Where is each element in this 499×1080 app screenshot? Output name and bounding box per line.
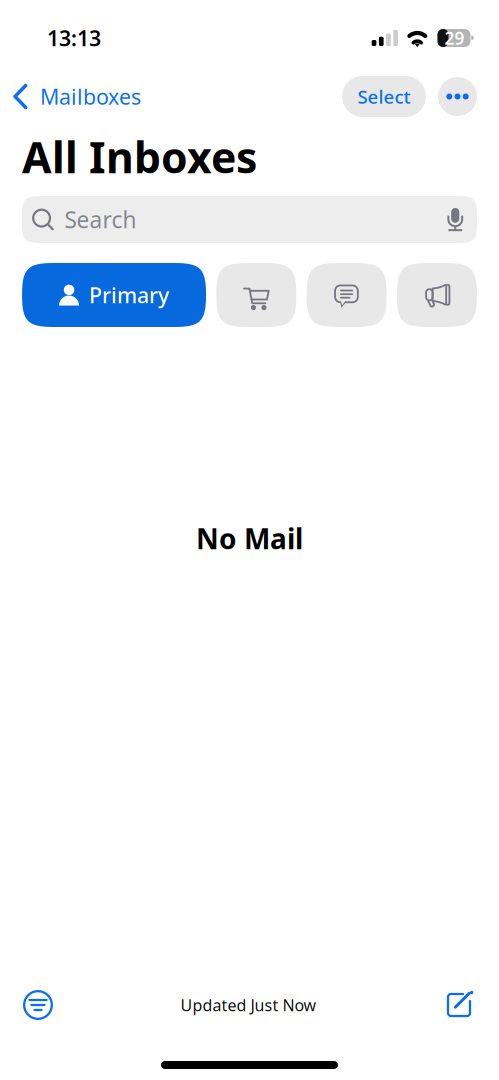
staticText: No Mail bbox=[196, 520, 303, 557]
staticText: Primary bbox=[89, 281, 169, 309]
button[interactable]: Compose bbox=[436, 983, 482, 1027]
button[interactable]: Mailboxes bbox=[0, 75, 153, 118]
staticText: 13:13 bbox=[47, 24, 101, 52]
staticText: 29 bbox=[444, 26, 464, 49]
button[interactable]: Search bbox=[22, 196, 477, 243]
button[interactable]: Filter bbox=[15, 983, 61, 1027]
button[interactable]: Updates bbox=[307, 263, 387, 327]
button[interactable]: Transactions bbox=[216, 263, 296, 327]
button[interactable]: Select bbox=[342, 76, 426, 117]
staticText: Updated Just Now bbox=[180, 994, 316, 1016]
button[interactable]: Promotions bbox=[397, 263, 477, 327]
staticText: Search bbox=[64, 204, 136, 234]
button[interactable]: More options bbox=[438, 77, 477, 116]
staticText: All Inboxes bbox=[22, 128, 257, 185]
button[interactable]: Primary bbox=[22, 263, 206, 327]
staticText: Mailboxes bbox=[40, 82, 141, 111]
staticText: Select bbox=[357, 84, 410, 109]
